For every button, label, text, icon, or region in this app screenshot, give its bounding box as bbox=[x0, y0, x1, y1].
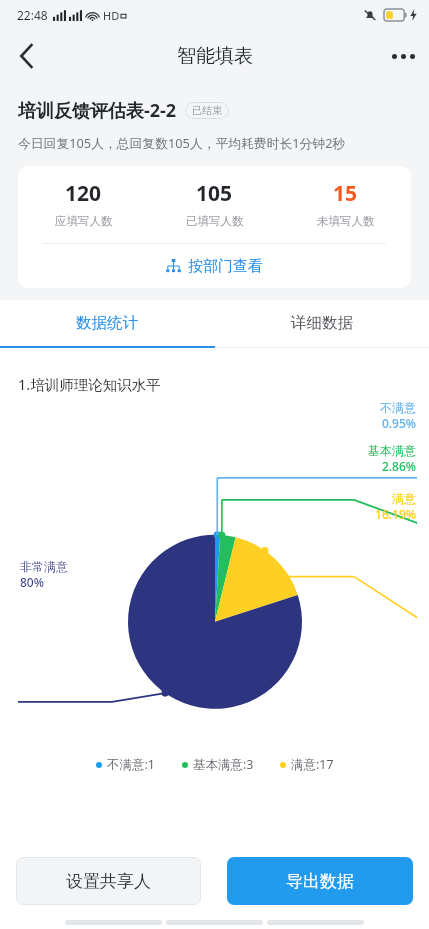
staticText: 应填写人数 bbox=[55, 214, 113, 228]
staticText: 2.86% bbox=[381, 458, 416, 474]
staticText: 基本满意 bbox=[368, 443, 416, 458]
staticText: 基本满意:3 bbox=[193, 756, 254, 773]
button[interactable]: Back bbox=[0, 30, 52, 82]
staticText: 按部门查看 bbox=[188, 257, 263, 276]
staticText: 未填写人数 bbox=[317, 214, 375, 228]
button[interactable]: 详细数据 bbox=[214, 300, 429, 346]
button[interactable]: 按部门查看 bbox=[18, 244, 411, 288]
staticText: HD bbox=[103, 8, 120, 23]
staticText: 1.培训师理论知识水平 bbox=[18, 374, 161, 394]
staticText: 满意:17 bbox=[291, 756, 334, 773]
staticText: 已结束 bbox=[192, 104, 222, 117]
staticText: 120 bbox=[65, 179, 102, 208]
staticText: 设置共享人 bbox=[66, 871, 151, 892]
staticText: 满意 bbox=[392, 491, 416, 506]
staticText: 22:48 bbox=[17, 7, 48, 23]
staticText: 已填写人数 bbox=[186, 214, 244, 228]
staticText: 80% bbox=[20, 574, 44, 590]
staticText: 0.95% bbox=[381, 415, 416, 431]
staticText: 今日回复105人，总回复数105人，平均耗费时长1分钟2秒 bbox=[18, 134, 346, 151]
staticText: 15 bbox=[333, 179, 358, 208]
button[interactable]: 数据统计 bbox=[0, 300, 214, 346]
staticText: 数据统计 bbox=[76, 313, 138, 333]
staticText: 105 bbox=[196, 179, 233, 208]
staticText: 不满意:1 bbox=[107, 756, 156, 773]
staticText: 培训反馈评估表-2-2 bbox=[18, 98, 177, 123]
staticText: 智能填表 bbox=[177, 44, 253, 68]
button[interactable]: 设置共享人 bbox=[16, 857, 201, 905]
staticText: 不满意 bbox=[380, 400, 416, 415]
staticText: 16.19% bbox=[375, 506, 416, 522]
staticText: 导出数据 bbox=[286, 871, 354, 892]
staticText: 详细数据 bbox=[291, 313, 353, 333]
button[interactable]: 导出数据 bbox=[227, 857, 413, 905]
button[interactable]: More options bbox=[377, 30, 429, 82]
staticText: 非常满意 bbox=[20, 559, 68, 574]
